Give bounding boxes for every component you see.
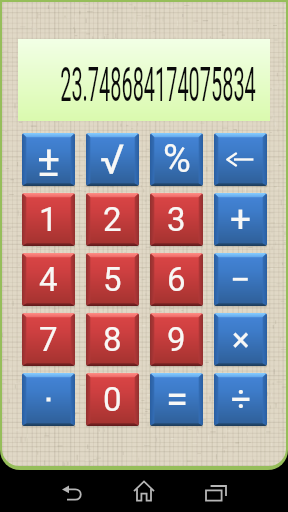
button[interactable]: 8 bbox=[86, 313, 139, 366]
button[interactable]: Divide bbox=[214, 373, 267, 426]
button[interactable]: 2 bbox=[86, 193, 139, 246]
button[interactable]: % bbox=[150, 133, 203, 186]
staticText: 2 bbox=[103, 200, 122, 239]
button[interactable]: Equals bbox=[150, 373, 203, 426]
button[interactable]: 0 bbox=[86, 373, 139, 426]
staticText: 3 bbox=[167, 200, 186, 239]
staticText: − bbox=[230, 259, 251, 301]
button[interactable]: Recents bbox=[192, 472, 240, 512]
staticText: 5 bbox=[103, 260, 122, 299]
button[interactable]: 9 bbox=[150, 313, 203, 366]
button[interactable]: Square root bbox=[86, 133, 139, 186]
staticText: × bbox=[232, 320, 250, 359]
staticText: 23.748684174075834 bbox=[60, 56, 256, 112]
staticText: ÷ bbox=[231, 379, 251, 420]
staticText: 6 bbox=[167, 260, 186, 299]
staticText: ± bbox=[37, 136, 60, 186]
staticText: % bbox=[163, 137, 191, 182]
button[interactable]: 5 bbox=[86, 253, 139, 306]
staticText: 1 bbox=[39, 200, 58, 239]
button[interactable]: 4 bbox=[22, 253, 75, 306]
staticText: 9 bbox=[167, 320, 186, 359]
button[interactable]: Minus bbox=[214, 253, 267, 306]
staticText: + bbox=[230, 198, 251, 241]
button[interactable]: 7 bbox=[22, 313, 75, 366]
button[interactable]: Decimal point bbox=[22, 373, 75, 426]
button[interactable]: 6 bbox=[150, 253, 203, 306]
staticText: = bbox=[166, 376, 188, 423]
button[interactable]: Plus minus bbox=[22, 133, 75, 186]
button[interactable]: Back bbox=[48, 472, 96, 512]
staticText: 8 bbox=[103, 320, 122, 359]
button[interactable]: Home bbox=[120, 470, 168, 512]
staticText: 0 bbox=[103, 380, 122, 419]
staticText: 7 bbox=[39, 320, 58, 359]
button[interactable]: Backspace bbox=[214, 133, 267, 186]
button[interactable]: 3 bbox=[150, 193, 203, 246]
button[interactable]: Multiply bbox=[214, 313, 267, 366]
staticText: 4 bbox=[39, 260, 58, 299]
button[interactable]: Plus bbox=[214, 193, 267, 246]
staticText: √ bbox=[100, 136, 125, 184]
button[interactable]: 1 bbox=[22, 193, 75, 246]
